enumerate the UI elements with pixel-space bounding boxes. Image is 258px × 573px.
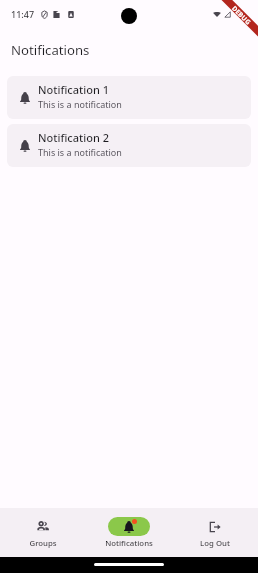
staticText: Notification 1 bbox=[38, 82, 109, 97]
staticText: Log Out bbox=[200, 538, 230, 549]
staticText: DEBUG bbox=[230, 4, 253, 27]
button[interactable]: Log Out bbox=[172, 508, 258, 527]
staticText: Groups bbox=[29, 538, 57, 549]
button[interactable]: Groups bbox=[0, 508, 86, 527]
button[interactable]: Notification 1 bbox=[7, 76, 251, 119]
button[interactable]: Notifications bbox=[86, 508, 172, 527]
staticText: Notifications bbox=[105, 538, 153, 549]
staticText: This is a notification bbox=[38, 98, 122, 110]
staticText: 11:47 bbox=[11, 8, 35, 20]
button[interactable]: Notification 2 bbox=[7, 124, 251, 167]
staticText: Notifications bbox=[11, 41, 90, 59]
staticText: This is a notification bbox=[38, 146, 122, 158]
staticText: Notification 2 bbox=[38, 130, 109, 145]
